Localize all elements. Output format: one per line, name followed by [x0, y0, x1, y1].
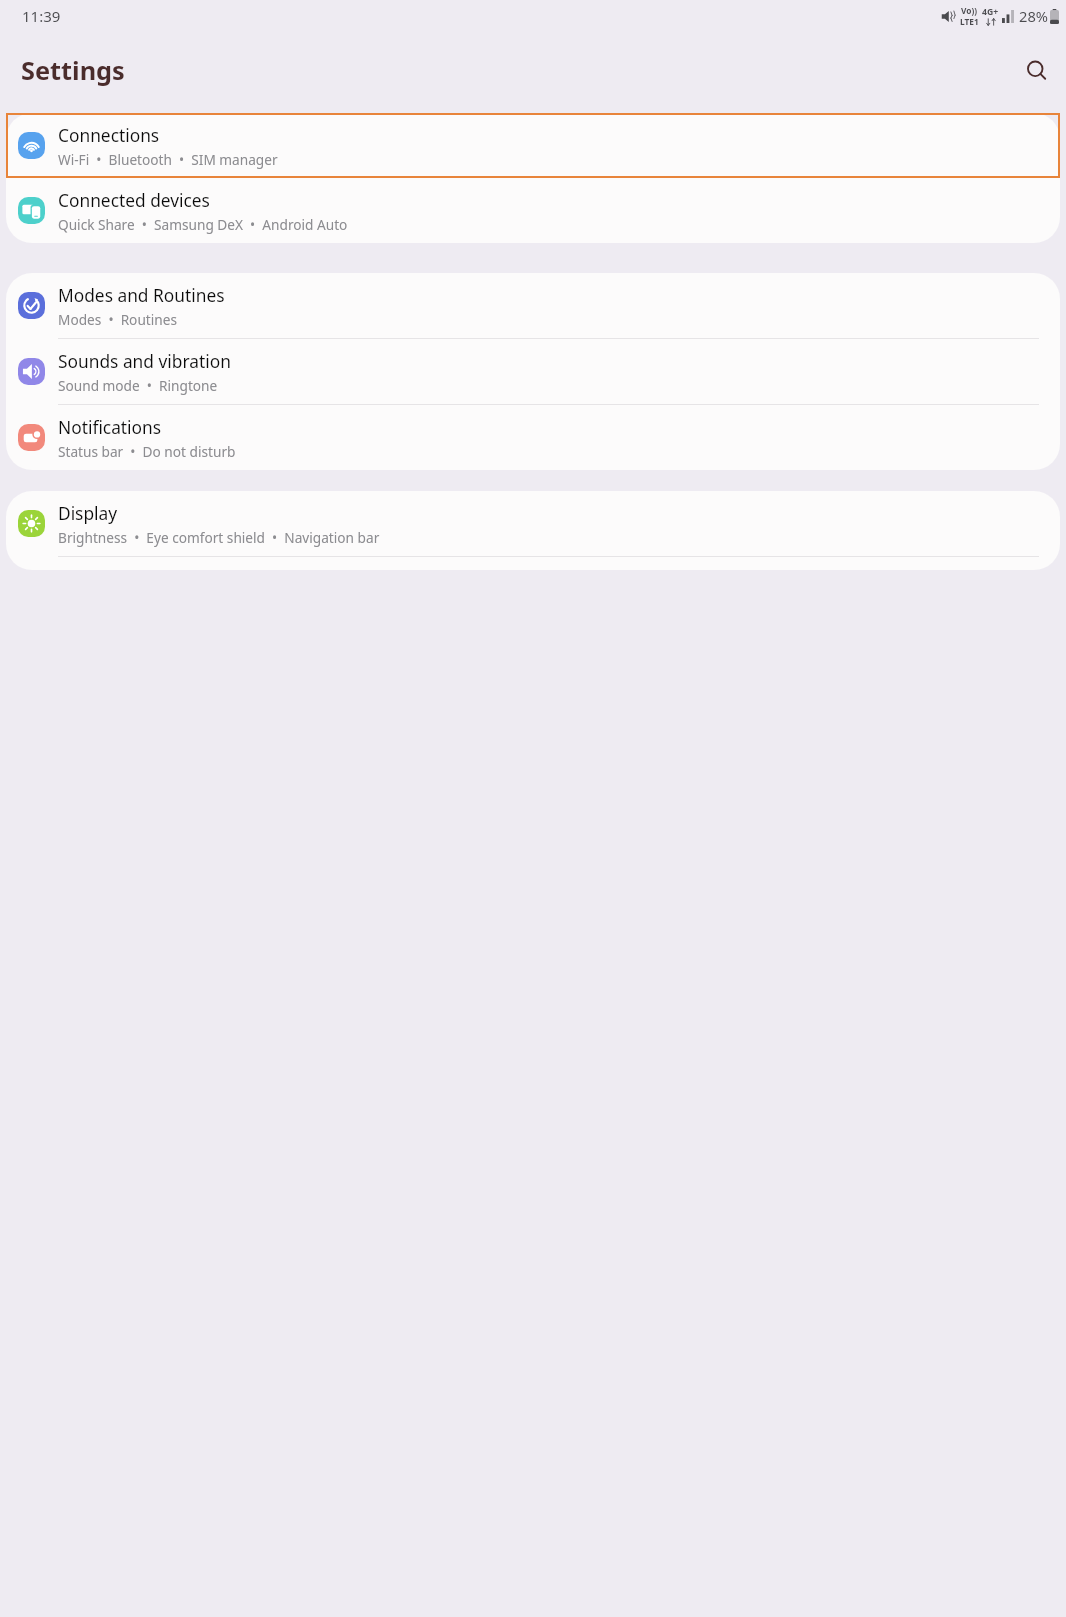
button[interactable]: Sounds and vibration	[6, 339, 1060, 404]
staticText: Vo))	[961, 5, 978, 16]
button[interactable]: Modes and Routines	[6, 273, 1060, 338]
staticText: LTE1	[960, 16, 979, 27]
staticText: Sound mode • Ringtone	[58, 376, 218, 395]
button[interactable]: Connections	[6, 113, 1060, 178]
button[interactable]: Connected devices	[6, 178, 1060, 243]
button[interactable]: Search settings	[1022, 56, 1051, 85]
staticText: Brightness • Eye comfort shield • Naviga…	[58, 528, 380, 547]
staticText: Sounds and vibration	[58, 349, 231, 373]
staticText: Connections	[58, 123, 160, 147]
staticText: Settings	[21, 53, 125, 88]
button[interactable]: Display	[6, 491, 1060, 556]
staticText: Wi-Fi • Bluetooth • SIM manager	[58, 150, 278, 169]
staticText: Connected devices	[58, 188, 210, 212]
staticText: 28%	[1019, 6, 1048, 26]
staticText: Modes • Routines	[58, 310, 177, 329]
staticText: Status bar • Do not disturb	[58, 442, 236, 461]
button[interactable]: Notifications	[6, 405, 1060, 470]
staticText: Modes and Routines	[58, 283, 225, 307]
staticText: Display	[58, 501, 118, 525]
staticText: 4G+	[982, 6, 999, 18]
staticText: Notifications	[58, 415, 162, 439]
staticText: Quick Share • Samsung DeX • Android Auto	[58, 215, 348, 234]
staticText: 11:39	[22, 6, 61, 26]
